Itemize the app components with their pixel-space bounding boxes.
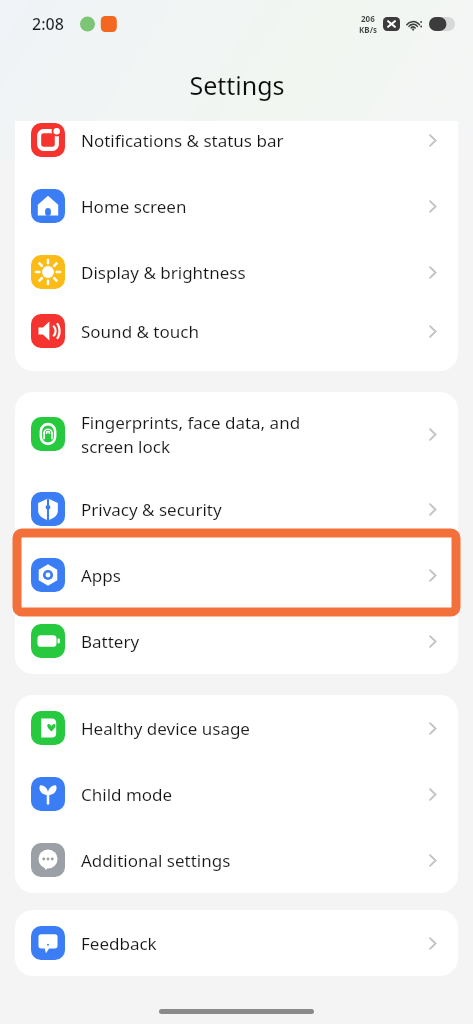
staticText: 2:08 [32, 13, 64, 35]
button[interactable]: Display & brightness [15, 239, 458, 305]
button[interactable]: Battery [15, 608, 458, 674]
staticText: Healthy device usage [81, 717, 415, 740]
staticText: Privacy & security [81, 498, 415, 521]
staticText: Child mode [81, 783, 415, 806]
button[interactable]: Child mode [15, 761, 458, 827]
button[interactable]: Feedback [15, 910, 458, 976]
staticText: Additional settings [81, 849, 415, 872]
staticText: Notifications & status bar [81, 129, 415, 152]
staticText: Sound & touch [81, 320, 415, 343]
staticText: 206 [361, 13, 375, 24]
button[interactable]: Apps [15, 542, 458, 608]
button[interactable]: Privacy & security [15, 476, 458, 542]
staticText: Battery [81, 630, 415, 653]
button[interactable]: Notifications & status bar [15, 121, 458, 173]
button[interactable]: Home screen [15, 173, 458, 239]
button[interactable]: Additional settings [15, 827, 458, 893]
staticText: Apps [81, 564, 415, 587]
button[interactable]: Healthy device usage [15, 695, 458, 761]
button[interactable]: Fingerprints, face data, and screen lock [15, 392, 458, 476]
staticText: Display & brightness [81, 261, 415, 284]
staticText: Home screen [81, 195, 415, 218]
staticText: KB/s [359, 24, 377, 35]
button[interactable]: Sound & touch [15, 305, 458, 357]
staticText: Settings [189, 68, 285, 102]
staticText: Feedback [81, 932, 415, 955]
staticText: Fingerprints, face data, and screen lock [81, 411, 415, 458]
